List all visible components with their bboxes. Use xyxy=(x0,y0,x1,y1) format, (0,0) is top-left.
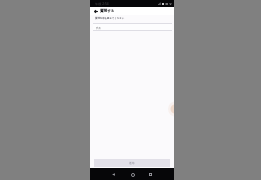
staticText: 送信 xyxy=(129,161,135,165)
button[interactable]: 送信 xyxy=(94,159,170,167)
button[interactable]: 氏名 xyxy=(93,23,172,31)
button[interactable]: Back xyxy=(93,7,98,15)
staticText: 氏名 xyxy=(96,26,102,29)
button[interactable]: Back xyxy=(110,170,117,179)
button[interactable]: Recents xyxy=(147,170,154,179)
staticText: 質問する xyxy=(100,9,115,14)
staticText: 質問内容を教えてください xyxy=(95,17,125,20)
staticText: 午後 2:54 xyxy=(95,2,109,6)
button[interactable]: Home xyxy=(129,170,136,179)
